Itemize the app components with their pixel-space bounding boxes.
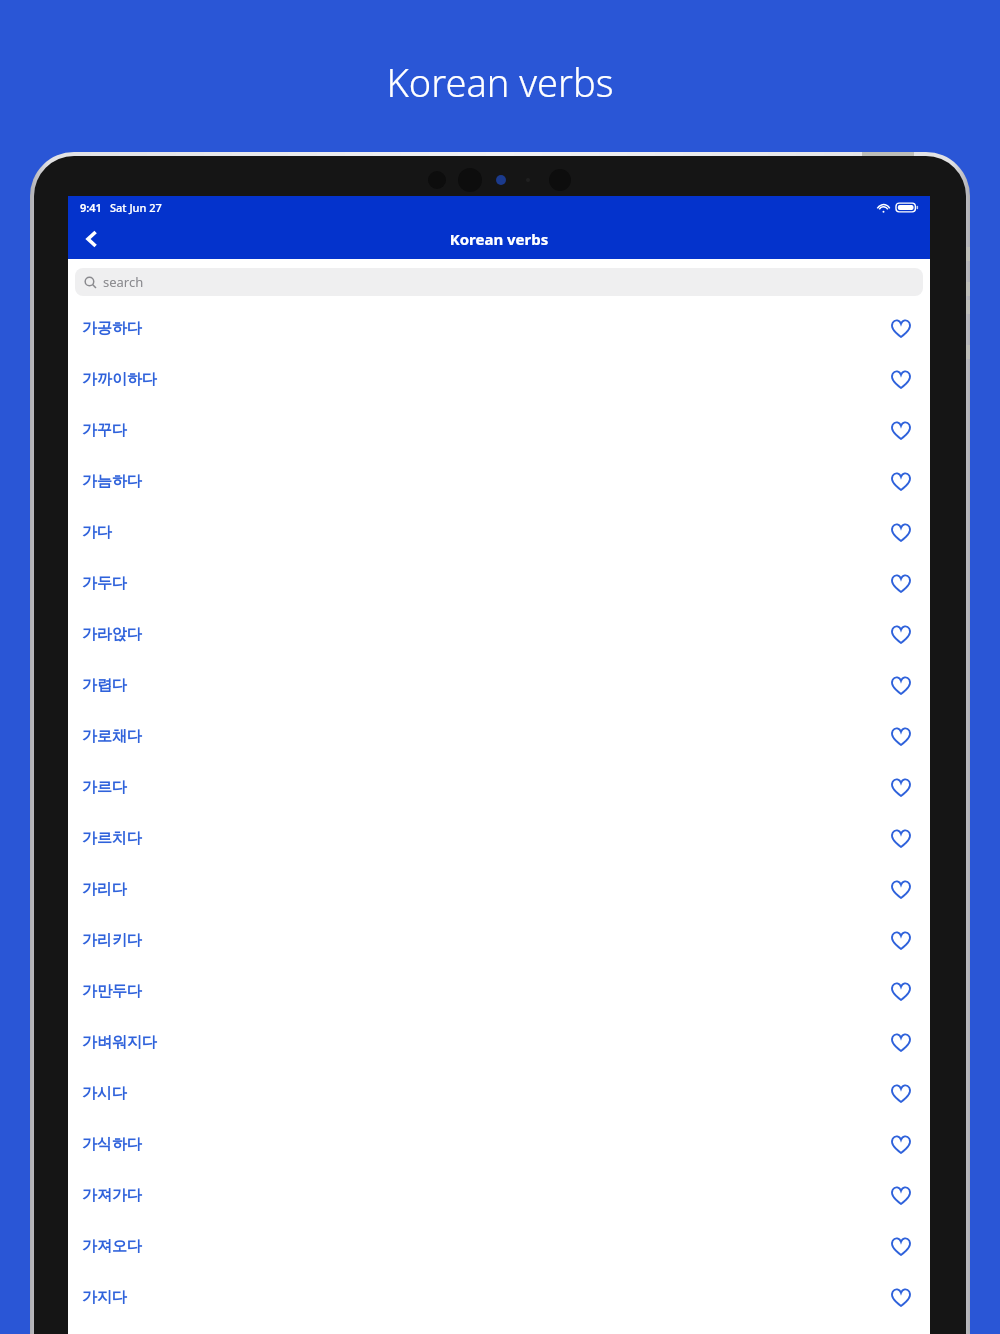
button[interactable]: 가로채다 [68,711,930,762]
button[interactable]: 가라앉다 [68,609,930,660]
button[interactable]: 가만두다 [68,966,930,1017]
button[interactable]: Favorite [886,875,916,905]
button[interactable]: 가다 [68,507,930,558]
staticText: Korean verbs [0,56,1000,108]
staticText: Sat Jun 27 [110,200,162,215]
button[interactable]: Favorite [886,569,916,599]
button[interactable]: Favorite [886,1028,916,1058]
staticText: 9:41 [80,200,102,215]
button[interactable]: Back [68,218,116,259]
staticText: 가다 [82,523,112,542]
button[interactable]: Favorite [886,467,916,497]
staticText: 가져오다 [82,1237,142,1256]
button[interactable]: 가벼워지다 [68,1017,930,1068]
button[interactable]: Favorite [886,416,916,446]
button[interactable]: Favorite [886,518,916,548]
staticText: 가시다 [82,1084,127,1103]
button[interactable]: Favorite [886,773,916,803]
button[interactable]: Favorite [886,671,916,701]
staticText: 가지다 [82,1288,127,1307]
staticText: 가까이하다 [82,370,157,389]
staticText: 가리키다 [82,931,142,950]
button[interactable]: Favorite [886,926,916,956]
staticText: 가공하다 [82,319,142,338]
staticText: 가두다 [82,574,127,593]
button[interactable]: 가늠하다 [68,456,930,507]
button[interactable]: Favorite [886,1130,916,1160]
button[interactable]: Favorite [886,824,916,854]
button[interactable]: 가두다 [68,558,930,609]
button[interactable]: 가까이하다 [68,354,930,405]
button[interactable]: 가지다 [68,1272,930,1323]
button[interactable]: 가리다 [68,864,930,915]
button[interactable]: 가져가다 [68,1170,930,1221]
button[interactable]: Favorite [886,977,916,1007]
button[interactable]: Favorite [886,365,916,395]
staticText: Korean verbs [68,229,930,249]
staticText: 가늠하다 [82,472,142,491]
button[interactable]: Favorite [886,722,916,752]
staticText: 가식하다 [82,1135,142,1154]
button[interactable]: 가르다 [68,762,930,813]
button[interactable]: 가져오다 [68,1221,930,1272]
button[interactable]: search [75,268,923,296]
button[interactable]: Favorite [886,1079,916,1109]
button[interactable]: 가리키다 [68,915,930,966]
staticText: 가꾸다 [82,421,127,440]
staticText: 가라앉다 [82,625,142,644]
button[interactable]: 가르치다 [68,813,930,864]
staticText: 가벼워지다 [82,1033,157,1052]
button[interactable]: 가공하다 [68,303,930,354]
button[interactable]: Favorite [886,314,916,344]
button[interactable]: 가꾸다 [68,405,930,456]
button[interactable]: Favorite [886,1232,916,1262]
button[interactable]: Favorite [886,1181,916,1211]
staticText: 가만두다 [82,982,142,1001]
staticText: 가로채다 [82,727,142,746]
button[interactable]: Favorite [886,620,916,650]
button[interactable]: 가렵다 [68,660,930,711]
staticText: search [103,273,144,291]
staticText: 가리다 [82,880,127,899]
staticText: 가르치다 [82,829,142,848]
button[interactable]: 가식하다 [68,1119,930,1170]
button[interactable]: 가시다 [68,1068,930,1119]
staticText: 가져가다 [82,1186,142,1205]
button[interactable]: Favorite [886,1283,916,1313]
staticText: 가렵다 [82,676,127,695]
staticText: 가르다 [82,778,127,797]
